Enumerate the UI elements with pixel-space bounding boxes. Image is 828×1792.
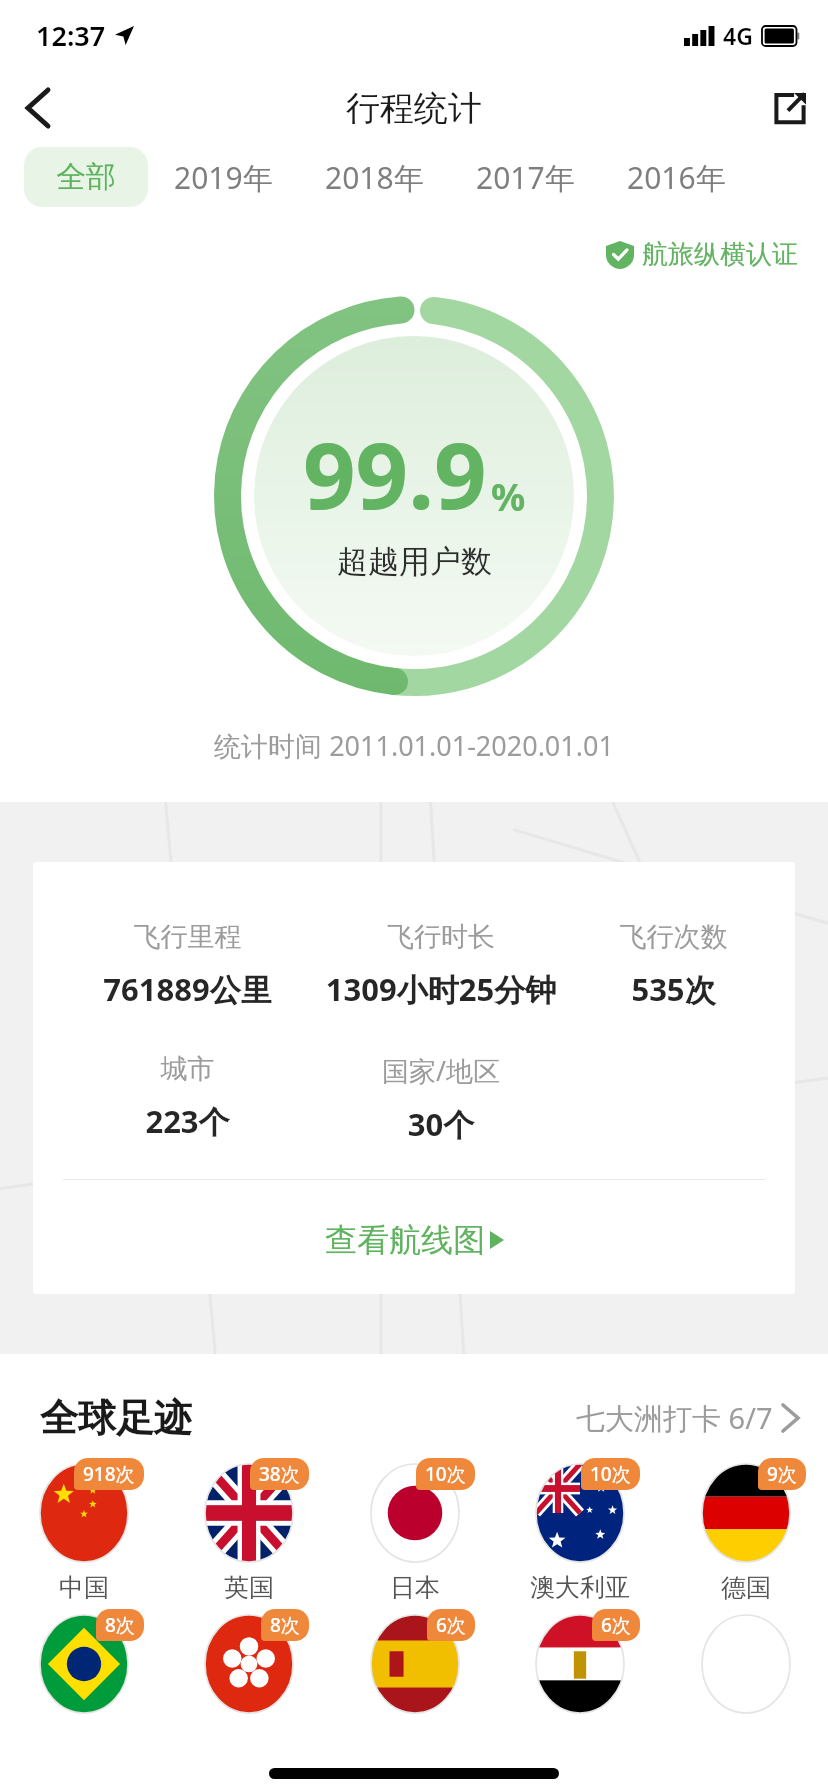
staticText: 761889公里 [73,968,302,1010]
staticText: 英国 [224,1572,274,1603]
staticText: 535次 [580,968,767,1010]
button[interactable]: 航旅纵横认证 [0,238,828,271]
button[interactable]: 8次 [166,1609,331,1713]
staticText: 飞行次数 [580,920,767,954]
staticText: 12:37 [36,17,106,54]
staticText: 七大洲打卡 6/7 [576,1398,773,1438]
button[interactable]: 918次 [1,1458,166,1603]
button[interactable]: Back [0,70,76,146]
staticText: 2016年 [627,157,726,197]
staticText: 飞行时长 [302,920,580,954]
button[interactable]: 8次 [1,1609,166,1713]
staticText: 2018年 [325,157,424,197]
staticText: 查看航线图 [325,1220,485,1260]
staticText: 10次 [590,1461,631,1487]
staticText: 30个 [302,1103,580,1145]
staticText: 国家/地区 [302,1052,580,1089]
staticText: 2019年 [174,157,273,197]
staticText: 6次 [601,1612,631,1638]
staticText: 918次 [83,1461,135,1487]
button[interactable]: 9次 [663,1458,828,1603]
button[interactable]: 38次 [166,1458,331,1603]
button[interactable]: 10次 [332,1458,497,1603]
staticText: 2017年 [476,157,575,197]
staticText: % [491,470,526,522]
button[interactable]: 七大洲打卡 6/7 [576,1398,798,1438]
button[interactable]: 6次 [497,1609,662,1713]
staticText: 99.9 [303,411,487,536]
staticText: 航旅纵横认证 [642,238,798,271]
button[interactable]: Share [752,70,828,146]
staticText: 行程统计 [346,87,482,130]
staticText: 4G [723,20,753,51]
staticText: 统计时间 2011.01.01-2020.01.01 [0,727,828,764]
staticText: 1309小时25分钟 [302,968,580,1010]
staticText: 超越用户数 [337,542,492,581]
staticText: 8次 [105,1612,135,1638]
staticText: 飞行里程 [73,920,302,954]
button[interactable]: 2019年 [148,146,299,208]
staticText: 德国 [721,1572,771,1603]
button[interactable]: 全部 [24,147,148,207]
button[interactable] [663,1609,828,1713]
staticText: 9次 [767,1461,797,1487]
staticText: 8次 [270,1612,300,1638]
staticText: 6次 [436,1612,466,1638]
button[interactable]: 2017年 [450,146,601,208]
button[interactable]: 6次 [332,1609,497,1713]
staticText: 中国 [59,1572,109,1603]
button[interactable]: 2018年 [299,146,450,208]
staticText: 城市 [73,1052,302,1086]
button[interactable]: 10次 [497,1458,662,1603]
staticText: 澳大利亚 [530,1572,630,1603]
button[interactable]: 2016年 [601,146,752,208]
staticText: 全球足迹 [40,1394,192,1442]
staticText: 38次 [259,1461,300,1487]
staticText: 223个 [73,1100,302,1142]
button[interactable]: 查看航线图 [33,1220,795,1260]
staticText: 全部 [56,158,116,196]
staticText: 10次 [425,1461,466,1487]
staticText: 日本 [390,1572,440,1603]
